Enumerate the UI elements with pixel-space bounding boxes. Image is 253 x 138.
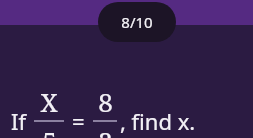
staticText: 8/10	[121, 12, 153, 32]
staticText: X	[40, 84, 58, 119]
staticText: , find x.	[120, 106, 196, 136]
staticText: =	[72, 106, 85, 136]
button[interactable]: Question 8 of 10	[98, 2, 176, 42]
staticText: 8	[98, 84, 113, 119]
staticText: If	[11, 106, 27, 136]
staticText: 2	[98, 123, 113, 138]
staticText: 5	[42, 123, 57, 138]
